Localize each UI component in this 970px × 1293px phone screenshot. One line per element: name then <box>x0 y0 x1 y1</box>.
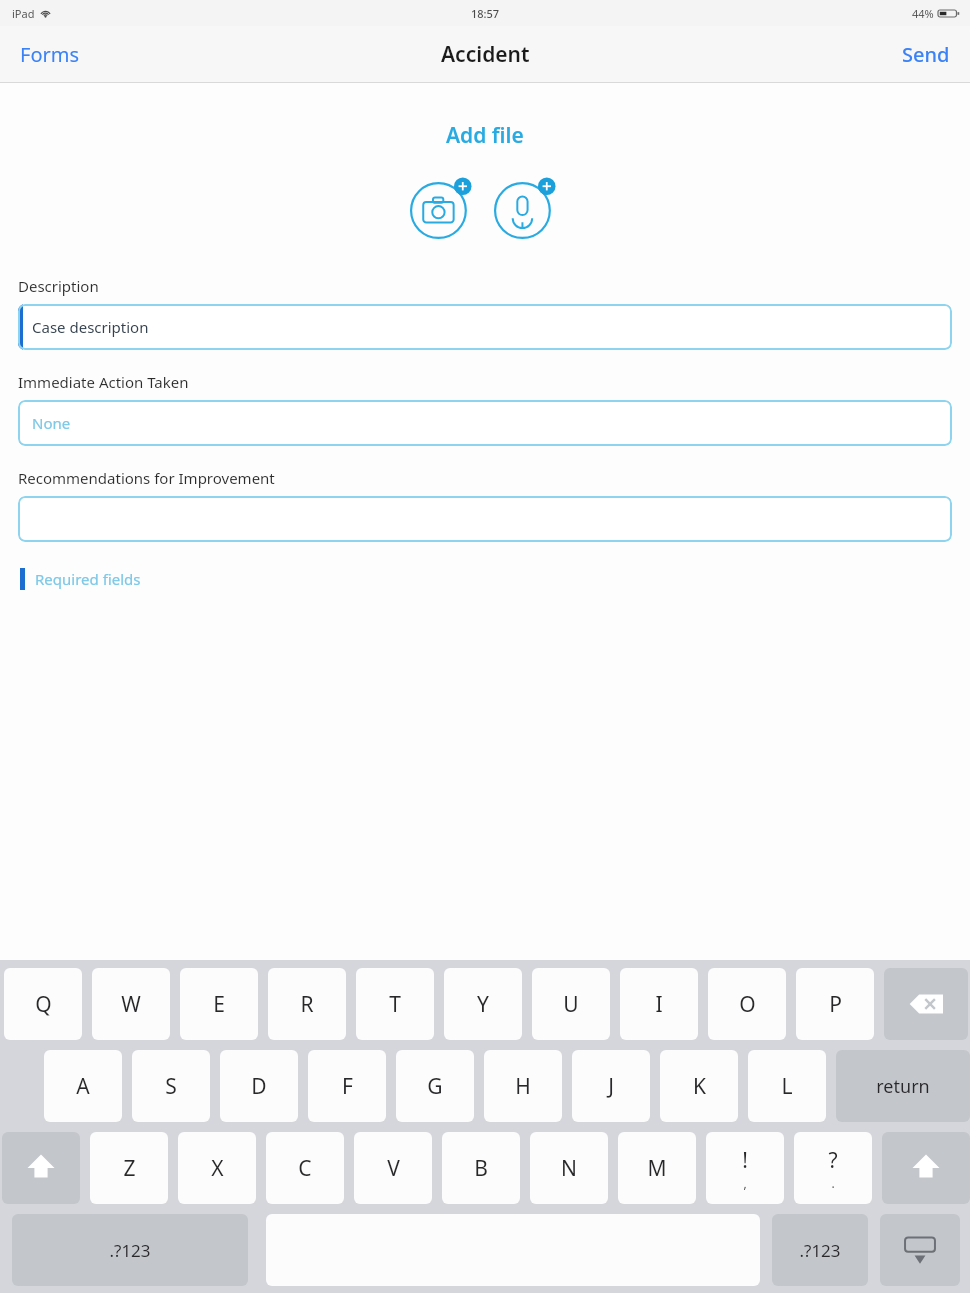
button[interactable]: Q <box>4 968 82 1040</box>
button[interactable]: E <box>180 968 258 1040</box>
button[interactable]: M <box>618 1132 696 1204</box>
staticText: H <box>515 1072 531 1101</box>
button[interactable]: F <box>308 1050 386 1122</box>
staticText: C <box>298 1154 312 1183</box>
button[interactable]: ? <box>794 1132 872 1204</box>
button[interactable]: V <box>354 1132 432 1204</box>
button[interactable]: O <box>708 968 786 1040</box>
staticText: O <box>739 990 756 1019</box>
button[interactable]: .?123 <box>12 1214 248 1286</box>
button[interactable]: Add file <box>434 117 536 154</box>
button[interactable]: Case description <box>18 304 952 350</box>
staticText: E <box>213 990 225 1019</box>
staticText: T <box>389 990 401 1019</box>
button[interactable]: A <box>44 1050 122 1122</box>
staticText: Send <box>902 41 950 68</box>
staticText: Z <box>123 1154 136 1183</box>
staticText: 44% <box>912 6 934 21</box>
staticText: K <box>693 1072 706 1101</box>
staticText: return <box>876 1074 930 1099</box>
staticText: Y <box>477 990 489 1019</box>
button[interactable]: U <box>532 968 610 1040</box>
button[interactable]: K <box>660 1050 738 1122</box>
staticText: .?123 <box>109 1239 151 1262</box>
button[interactable]: S <box>132 1050 210 1122</box>
button[interactable]: Z <box>90 1132 168 1204</box>
button[interactable]: H <box>484 1050 562 1122</box>
button[interactable]: Hide keyboard <box>880 1214 960 1286</box>
button[interactable]: Forms <box>0 33 100 76</box>
button[interactable] <box>18 496 952 542</box>
staticText: L <box>781 1072 793 1101</box>
staticText: ? <box>828 1146 838 1175</box>
staticText: M <box>647 1154 667 1183</box>
staticText: Case description <box>32 317 149 337</box>
staticText: I <box>655 990 663 1019</box>
button[interactable]: Shift <box>882 1132 970 1204</box>
staticText: N <box>561 1154 577 1183</box>
button[interactable]: Required fields <box>20 568 970 590</box>
button[interactable]: Add photo <box>405 168 481 244</box>
button[interactable]: R <box>268 968 346 1040</box>
staticText: R <box>300 990 314 1019</box>
button[interactable]: P <box>796 968 874 1040</box>
button[interactable]: C <box>266 1132 344 1204</box>
staticText: .?123 <box>799 1239 841 1262</box>
button[interactable]: G <box>396 1050 474 1122</box>
button[interactable]: I <box>620 968 698 1040</box>
staticText: F <box>342 1072 353 1101</box>
button[interactable]: X <box>178 1132 256 1204</box>
button[interactable]: None <box>18 400 952 446</box>
button[interactable]: L <box>748 1050 826 1122</box>
staticText: Description <box>18 276 99 296</box>
staticText: W <box>121 990 141 1019</box>
staticText: Forms <box>20 41 80 68</box>
button[interactable]: Backspace <box>884 968 968 1040</box>
staticText: Required fields <box>35 569 141 589</box>
staticText: S <box>165 1072 177 1101</box>
button[interactable]: Send <box>882 33 970 76</box>
button[interactable]: D <box>220 1050 298 1122</box>
staticText: iPad <box>12 6 35 21</box>
button[interactable]: ! <box>706 1132 784 1204</box>
staticText: Add file <box>446 121 524 150</box>
button[interactable]: J <box>572 1050 650 1122</box>
staticText: G <box>427 1072 443 1101</box>
button[interactable]: N <box>530 1132 608 1204</box>
staticText: X <box>211 1154 224 1183</box>
button[interactable]: Add audio recording <box>489 168 565 244</box>
staticText: . <box>831 1175 835 1191</box>
button[interactable]: T <box>356 968 434 1040</box>
staticText: P <box>829 990 842 1019</box>
staticText: Immediate Action Taken <box>18 372 189 392</box>
button[interactable]: W <box>92 968 170 1040</box>
staticText: U <box>563 990 579 1019</box>
staticText: None <box>32 413 71 433</box>
button[interactable]: Shift <box>2 1132 80 1204</box>
staticText: 18:57 <box>471 6 500 21</box>
button[interactable]: .?123 <box>772 1214 868 1286</box>
staticText: B <box>474 1154 488 1183</box>
staticText: J <box>608 1072 614 1101</box>
staticText: Accident <box>441 40 530 69</box>
staticText: D <box>251 1072 267 1101</box>
staticText: , <box>743 1175 747 1191</box>
button[interactable]: Y <box>444 968 522 1040</box>
staticText: ! <box>742 1146 748 1175</box>
button[interactable]: B <box>442 1132 520 1204</box>
staticText: A <box>76 1072 90 1101</box>
staticText: Q <box>35 990 52 1019</box>
staticText: Recommendations for Improvement <box>18 468 275 488</box>
button[interactable]: return <box>836 1050 970 1122</box>
staticText: V <box>387 1154 400 1183</box>
